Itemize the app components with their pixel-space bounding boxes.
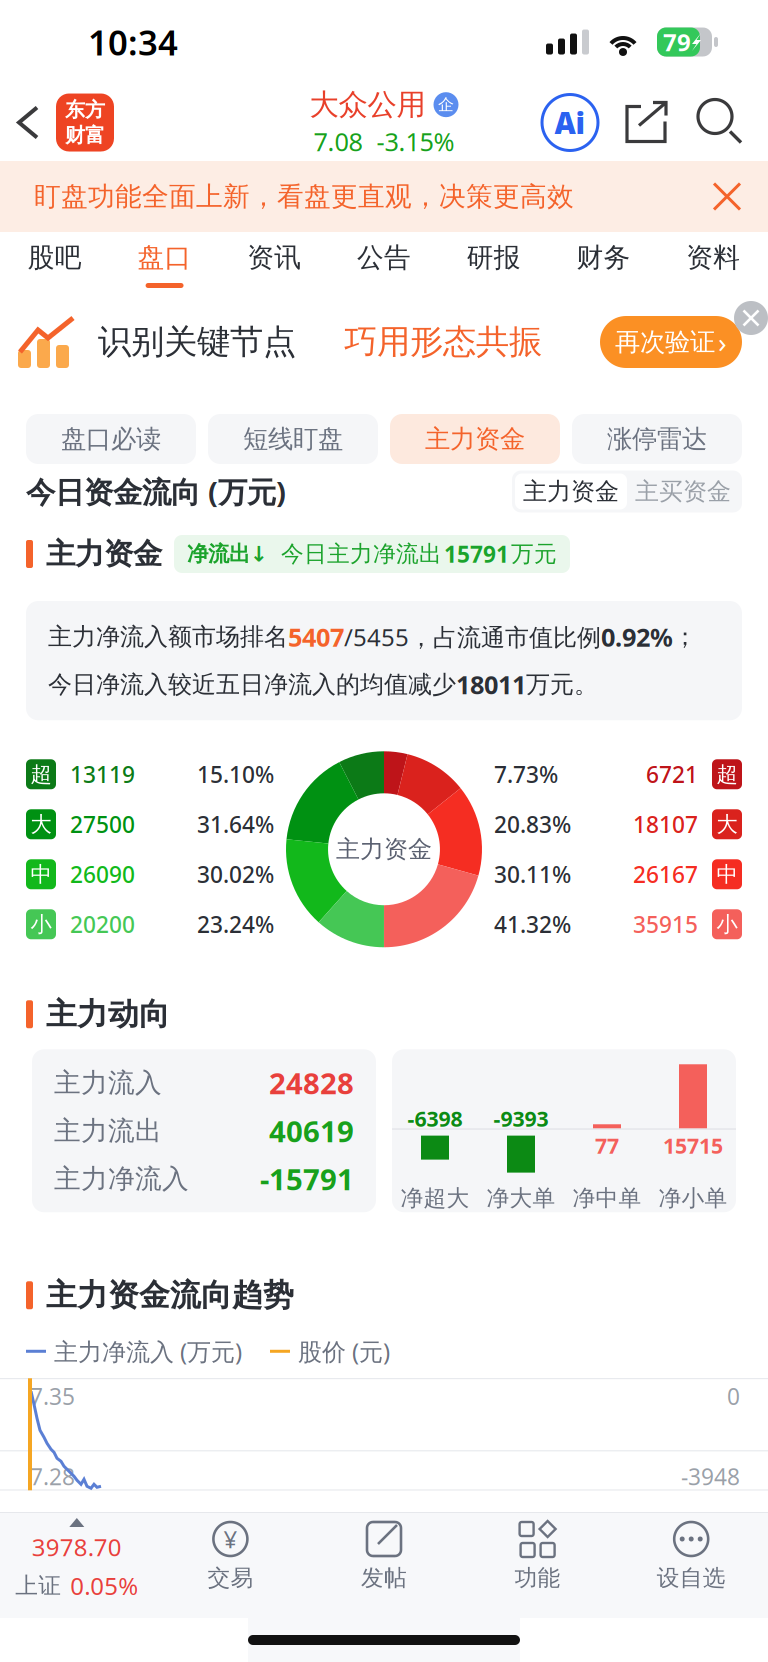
staticText: -15791 [260,1159,354,1198]
button[interactable]: 研报 [439,232,549,296]
staticText: 今日主力净流出 [281,540,442,568]
button[interactable]: 发帖 [307,1512,461,1618]
button[interactable]: 东方 [56,93,114,151]
button[interactable]: 涨停雷达 [572,414,742,464]
staticText: 7.28 [30,1461,75,1491]
staticText: 盘口 [138,241,192,274]
button[interactable]: 盘口必读 [26,414,196,464]
button[interactable]: 主力资金 [390,414,560,464]
staticText: 财富 [65,123,105,148]
staticText: 企 [438,95,454,115]
staticText: -3948 [681,1461,740,1491]
button[interactable]: ¥ [154,1512,307,1618]
staticText: 主力资金 [46,536,162,572]
staticText: 15791 [444,539,509,569]
staticText: 7.35 [30,1381,75,1411]
staticText: 26090 [70,859,135,889]
staticText: 10:34 [88,19,178,65]
staticText: ； [673,622,697,652]
button[interactable]: 功能 [461,1512,614,1618]
button[interactable]: 资讯 [219,232,329,296]
button[interactable]: Share [624,100,668,144]
staticText: 主买资金 [635,477,731,506]
staticText: 今日净流入较近五日净流入的均值减少 [48,670,456,699]
button[interactable]: 主力资金 [515,473,627,509]
staticText: 0.05% [70,1570,138,1602]
staticText: 大 [716,811,737,837]
staticText: 18011 [456,668,526,701]
staticText: 发帖 [361,1564,407,1592]
staticText: 大 [30,811,51,837]
staticText: 35915 [633,909,698,939]
staticText: 盯盘功能全面上新，看盘更直观，决策更高效 [34,180,574,213]
button[interactable]: 设自选 [614,1512,768,1618]
staticText: 7.73% [494,759,558,789]
staticText: › [718,323,727,361]
staticText: 77 [595,1131,619,1160]
button[interactable]: 短线盯盘 [208,414,378,464]
staticText: 15715 [663,1131,723,1160]
staticText: 主力动向 [46,995,170,1033]
staticText: 18107 [633,809,698,839]
staticText: 主力净流入 [54,1162,189,1195]
staticText: 15.10% [197,759,274,789]
button[interactable]: Dismiss banner [698,167,756,225]
staticText: 上证 [15,1572,61,1600]
staticText: 中 [30,861,51,887]
staticText: 主力流出 [54,1114,162,1147]
staticText: 41.32% [494,909,571,939]
staticText: 净超大 [400,1184,469,1212]
staticText: 东方 [65,97,105,122]
staticText: 公告 [357,241,411,274]
staticText: 30.02% [197,859,274,889]
staticText: 超 [716,761,737,787]
staticText: ¥ [223,1523,237,1555]
staticText: 大众公用 [309,87,425,123]
staticText: 涨停雷达 [607,423,707,454]
staticText: 净流出 [187,541,250,567]
staticText: 27500 [70,809,135,839]
staticText: 7.08 -3.15% [313,125,454,158]
staticText: 财务 [576,241,630,274]
staticText: 主力资金 [336,834,432,864]
staticText: 资讯 [247,241,301,274]
button[interactable]: 3978.70 [0,1512,154,1618]
button[interactable]: 主买资金 [627,473,739,509]
staticText: ↓ [250,542,268,566]
staticText: 13119 [70,759,135,789]
staticText: 24828 [269,1063,354,1102]
button[interactable]: 盘口 [110,232,219,296]
staticText: 主力资金 [523,477,619,506]
staticText: 23.24% [197,909,274,939]
staticText: -6398 [407,1104,462,1133]
staticText: 主力净流入额市场排名 [48,622,288,652]
button[interactable]: 公告 [329,232,439,296]
button[interactable]: Search [698,99,744,145]
staticText: 主力资金流向趋势 [46,1276,294,1314]
staticText: 股价 (元) [298,1335,390,1367]
staticText: 中 [716,861,737,887]
staticText: 20.83% [494,809,571,839]
button[interactable]: 资料 [658,232,768,296]
staticText: 30.11% [494,859,571,889]
staticText: 今日资金流向 (万元) [26,472,286,511]
staticText: Ai [554,103,585,142]
staticText: 40619 [269,1111,354,1150]
staticText: 净大单 [486,1184,555,1212]
staticText: 识别关键节点 [98,321,296,362]
button[interactable]: 识别关键节点 [0,296,768,388]
staticText: 研报 [467,241,521,274]
staticText: 交易 [207,1564,253,1592]
staticText: 设自选 [657,1564,726,1592]
button[interactable]: AI assistant [542,94,598,150]
staticText: 超 [30,761,51,787]
button[interactable]: Close ad [734,296,768,335]
staticText: 26167 [633,859,698,889]
button[interactable]: Back [0,90,56,154]
staticText: 5407 [288,620,344,654]
button[interactable]: 股吧 [0,232,110,296]
staticText: 巧用形态共振 [344,321,542,362]
staticText: 净中单 [572,1184,641,1212]
staticText: 短线盯盘 [243,423,343,454]
button[interactable]: 财务 [549,232,658,296]
